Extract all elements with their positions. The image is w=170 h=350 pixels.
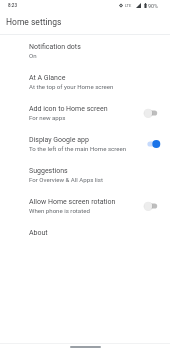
button[interactable]: About (0, 221, 170, 252)
staticText: For Overview & All Apps list (29, 176, 103, 183)
button[interactable]: At A Glance (0, 66, 170, 97)
staticText: At the top of your Home screen (29, 83, 114, 90)
button[interactable]: Switch off (143, 199, 170, 213)
staticText: Add icon to Home screen (29, 105, 108, 113)
button[interactable]: Add icon to Home screen (0, 97, 170, 128)
button[interactable]: Notification dots (0, 35, 170, 66)
staticText: At A Glance (29, 74, 66, 82)
button[interactable]: Switch off (143, 106, 170, 120)
staticText: For new apps (29, 114, 66, 121)
staticText: When phone is rotated (29, 207, 90, 214)
button[interactable]: Display Google app (0, 128, 170, 159)
staticText: Allow Home screen rotation (29, 198, 116, 206)
button[interactable]: Suggestions (0, 159, 170, 190)
staticText: To the left of the main Home screen (29, 145, 127, 152)
staticText: 90% (148, 3, 159, 9)
button[interactable]: Switch on (143, 137, 170, 151)
staticText: About (29, 229, 48, 237)
staticText: Notification dots (29, 43, 81, 51)
staticText: LTE (125, 3, 132, 8)
staticText: Display Google app (29, 136, 89, 144)
button[interactable]: Allow Home screen rotation (0, 190, 170, 221)
staticText: On (29, 52, 37, 59)
staticText: 8:23 (8, 3, 18, 8)
staticText: Suggestions (29, 167, 68, 175)
staticText: Home settings (6, 17, 62, 27)
